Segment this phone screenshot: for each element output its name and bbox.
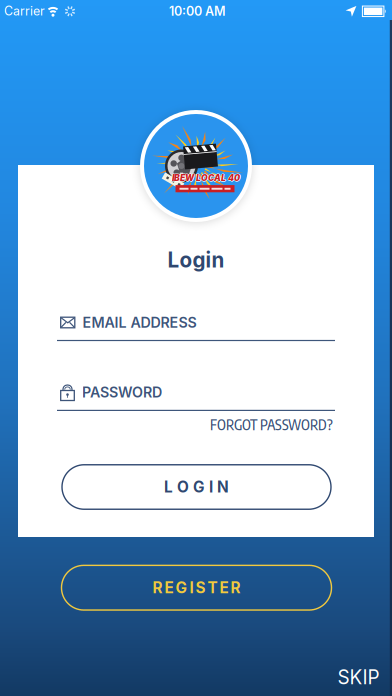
- button[interactable]: EMAIL ADDRESS: [57, 312, 335, 342]
- staticText: IBEW LOCAL 40: [172, 173, 240, 184]
- staticText: 10:00 AM: [169, 4, 226, 19]
- button[interactable]: PASSWORD: [57, 382, 335, 412]
- button[interactable]: FORGOT PASSWORD?: [57, 417, 333, 433]
- staticText: EMAIL ADDRESS: [82, 314, 196, 331]
- staticText: IBEW LOCAL 40: [172, 172, 240, 182]
- staticText: IBEW LOCAL 40: [172, 173, 240, 183]
- staticText: FORGOT PASSWORD?: [210, 416, 333, 433]
- staticText: Login: [167, 247, 224, 272]
- button[interactable]: SKIP: [338, 666, 380, 689]
- staticText: IBEW LOCAL 40: [173, 173, 241, 183]
- staticText: Carrier: [4, 3, 45, 18]
- staticText: PASSWORD: [82, 384, 162, 401]
- button[interactable]: R E G I S T E R: [61, 565, 331, 610]
- staticText: R E G I S T E R: [152, 578, 240, 597]
- staticText: L O G I N: [164, 478, 229, 496]
- staticText: SKIP: [338, 666, 380, 689]
- button[interactable]: L O G I N: [62, 465, 331, 509]
- staticText: IBEW LOCAL 40: [171, 173, 239, 183]
